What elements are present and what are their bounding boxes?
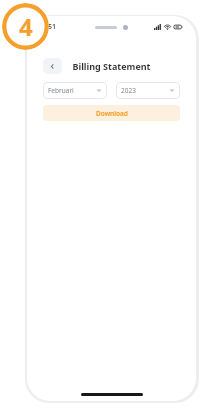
button[interactable]: 2023	[116, 82, 180, 99]
staticText: 2023	[121, 86, 136, 95]
staticText: 4.51	[42, 22, 56, 32]
staticText: Download	[96, 109, 128, 118]
staticText: Februari	[48, 86, 74, 95]
staticText: Billing Statement	[72, 60, 151, 72]
button[interactable]: Back	[43, 58, 62, 74]
button[interactable]: Februari	[43, 82, 107, 99]
button[interactable]: Download	[43, 105, 180, 121]
staticText: 4	[19, 10, 33, 43]
